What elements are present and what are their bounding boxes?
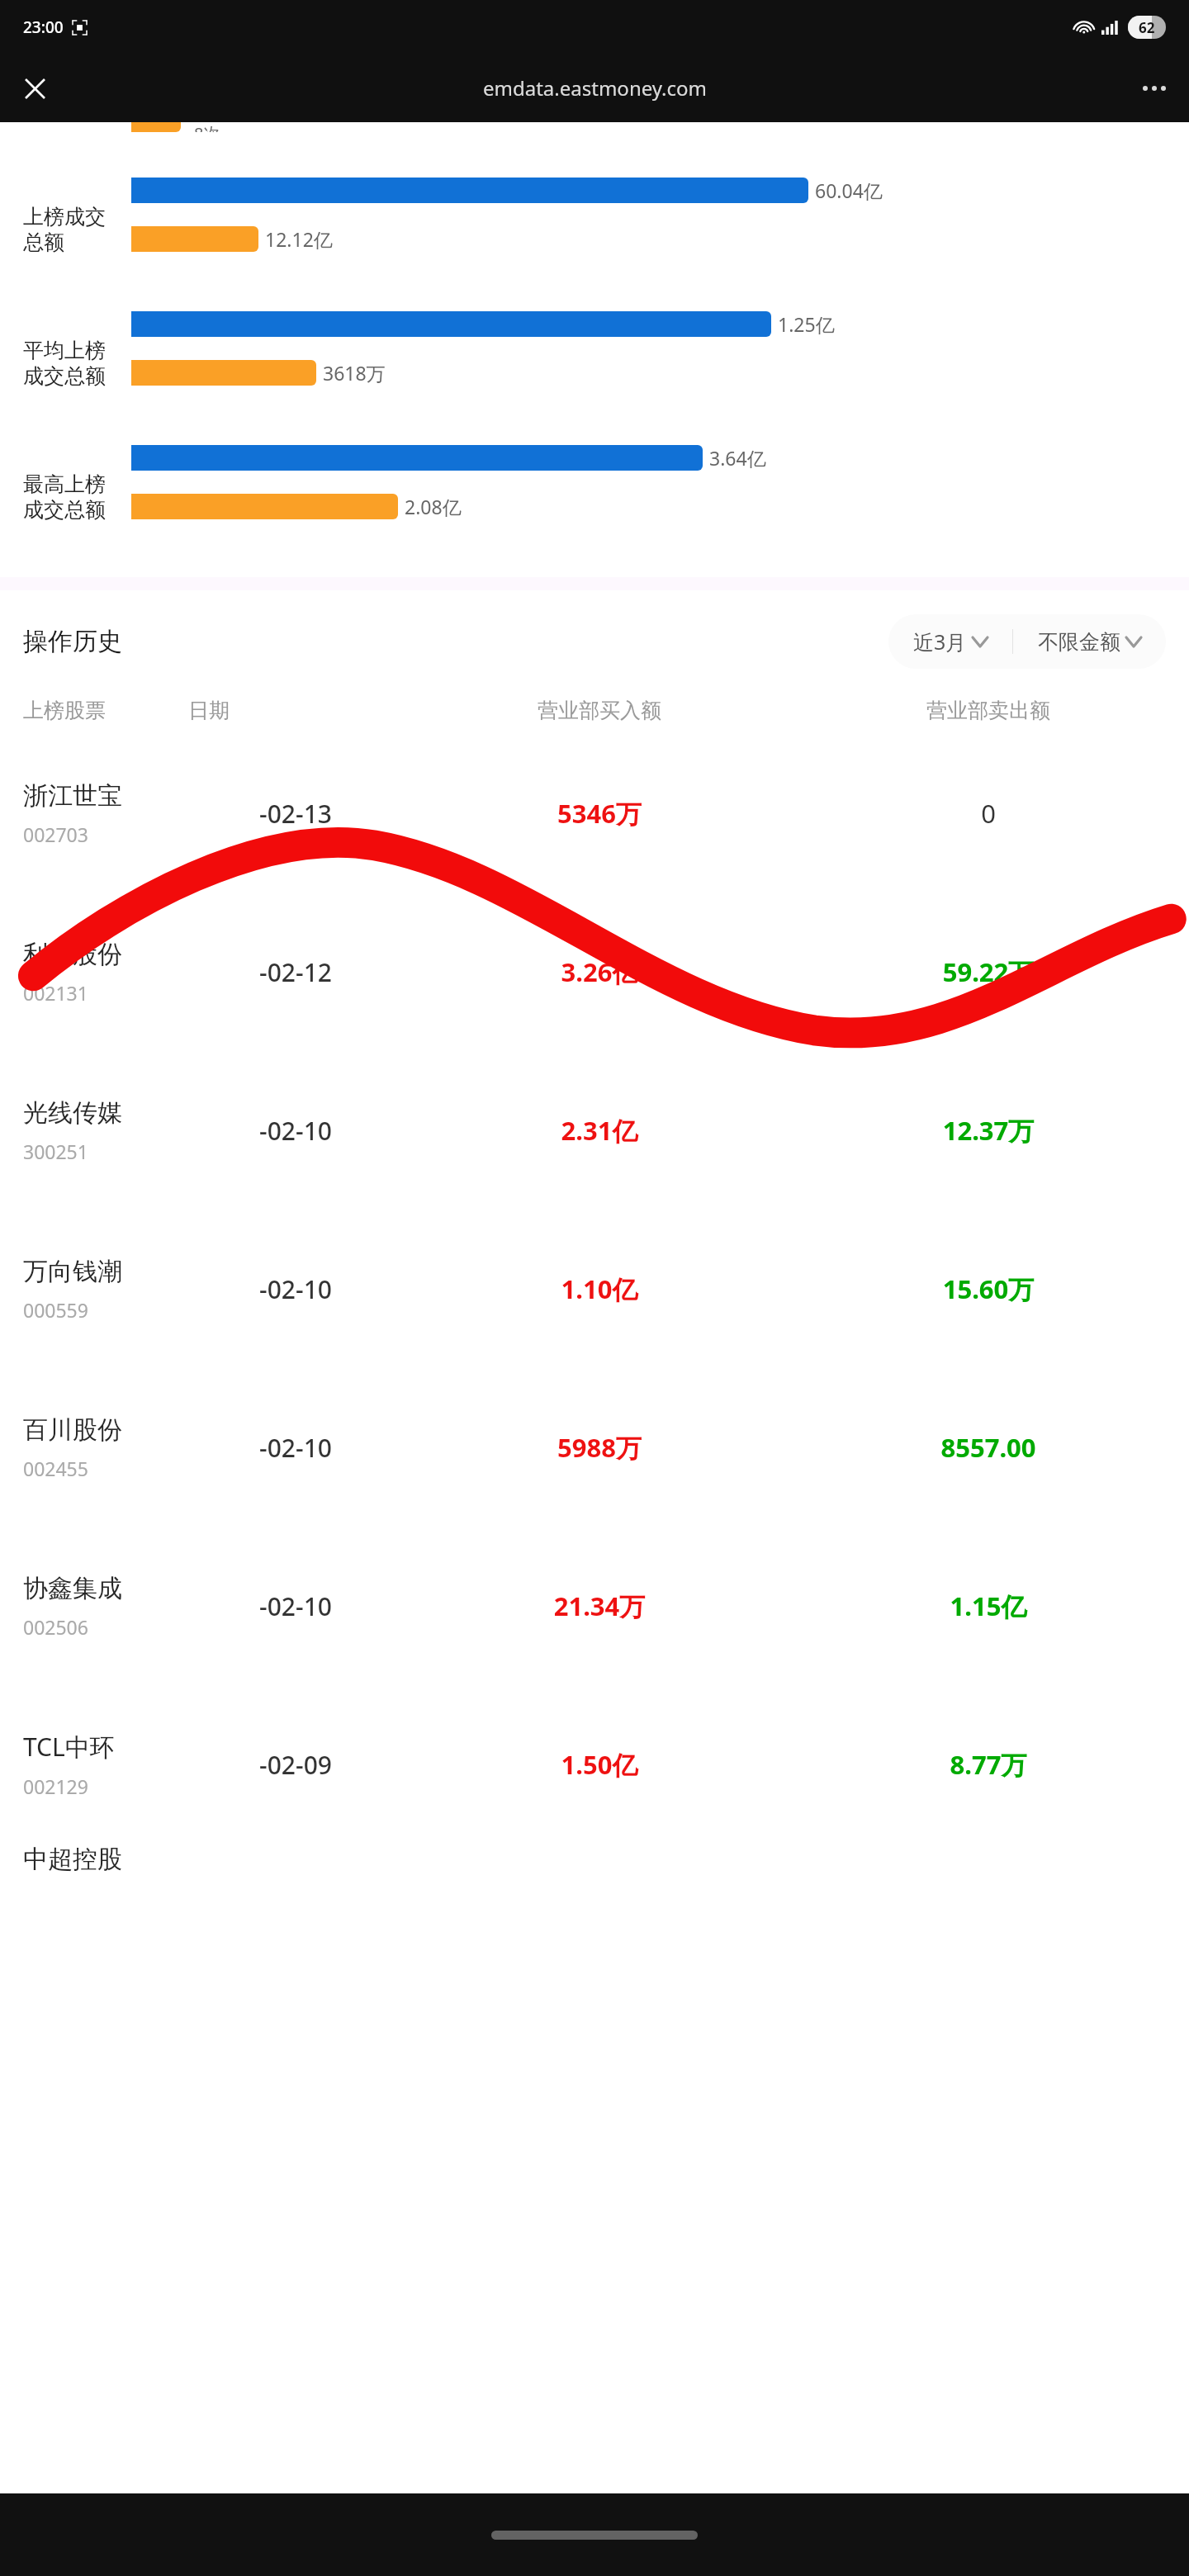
staticText: 60.04亿 [815,178,883,203]
staticText: 百川股份 [23,1414,122,1446]
staticText: 300251 [23,1139,88,1164]
staticText: 浙江世宝 [23,780,122,812]
staticText: 2.08亿 [405,494,462,519]
staticText: -02-10 [188,1431,403,1465]
staticText: 协鑫集成 [23,1573,122,1604]
staticText: 光线传媒 [23,1097,122,1129]
staticText: -02-10 [188,1272,403,1306]
staticText: 002455 [23,1456,88,1481]
staticText: 002131 [23,980,88,1006]
staticText: -02-13 [188,797,403,831]
staticText: -02-12 [188,955,403,989]
button[interactable]: 万向钱潮 [0,1210,1189,1368]
staticText: 62 [1139,18,1155,37]
staticText: 0 [796,796,1181,831]
button[interactable]: TCL中环 [0,1685,1189,1844]
button[interactable]: Close [12,65,58,111]
staticText: 总额 [23,230,64,255]
staticText: 营业部买入额 [403,698,796,723]
staticText: 近3月 [913,627,967,656]
staticText: 上榜成交 [23,204,106,230]
staticText: 上榜股票 [23,698,188,723]
button[interactable]: 百川股份 [0,1368,1189,1527]
staticText: 日期 [188,698,403,723]
staticText: 3618万 [323,360,386,386]
staticText: 15.60万 [796,1271,1181,1306]
staticText: 5346万 [403,796,796,831]
button[interactable]: 近3月 [888,627,1012,656]
staticText: -02-10 [188,1114,403,1148]
staticText: 12.37万 [796,1113,1181,1148]
staticText: 不限金额 [1038,629,1120,655]
staticText: 成交总额 [23,497,106,523]
staticText: 000559 [23,1297,88,1323]
button[interactable]: 不限金额 [1013,629,1166,655]
staticText: 59.22万 [796,954,1181,989]
button[interactable]: 协鑫集成 [0,1527,1189,1685]
staticText: 平均上榜 [23,338,106,363]
staticText: 8557.00 [796,1430,1181,1465]
staticText: 23:00 [23,17,64,38]
staticText: 5988万 [403,1430,796,1465]
staticText: 成交总额 [23,363,106,389]
staticText: TCL中环 [23,1730,115,1764]
button[interactable]: 光线传媒 [0,1051,1189,1210]
staticText: 8次 [194,122,220,132]
staticText: -02-10 [188,1589,403,1623]
button[interactable]: 利欧股份 [0,893,1189,1051]
staticText: emdata.eastmoney.com [483,74,707,102]
staticText: 营业部卖出额 [796,698,1181,723]
staticText: 1.10亿 [403,1271,796,1306]
staticText: 8.77万 [796,1747,1181,1782]
staticText: 操作历史 [23,626,122,657]
staticText: 002129 [23,1773,88,1799]
staticText: 最高上榜 [23,471,106,497]
staticText: 12.12亿 [265,226,333,252]
staticText: 002703 [23,822,88,847]
staticText: 3.26亿 [403,954,796,989]
staticText: 2.31亿 [403,1113,796,1148]
staticText: 1.50亿 [403,1747,796,1782]
staticText: 1.25亿 [778,311,835,337]
staticText: 利欧股份 [23,939,122,970]
staticText: 002506 [23,1614,88,1640]
staticText: 中超控股 [23,1844,122,1875]
staticText: 21.34万 [403,1589,796,1623]
staticText: 万向钱潮 [23,1256,122,1287]
staticText: 3.64亿 [709,445,766,471]
button[interactable]: More options [1131,65,1177,111]
staticText: 1.15亿 [796,1589,1181,1623]
staticText: -02-09 [188,1748,403,1782]
button[interactable]: 浙江世宝 [0,734,1189,893]
